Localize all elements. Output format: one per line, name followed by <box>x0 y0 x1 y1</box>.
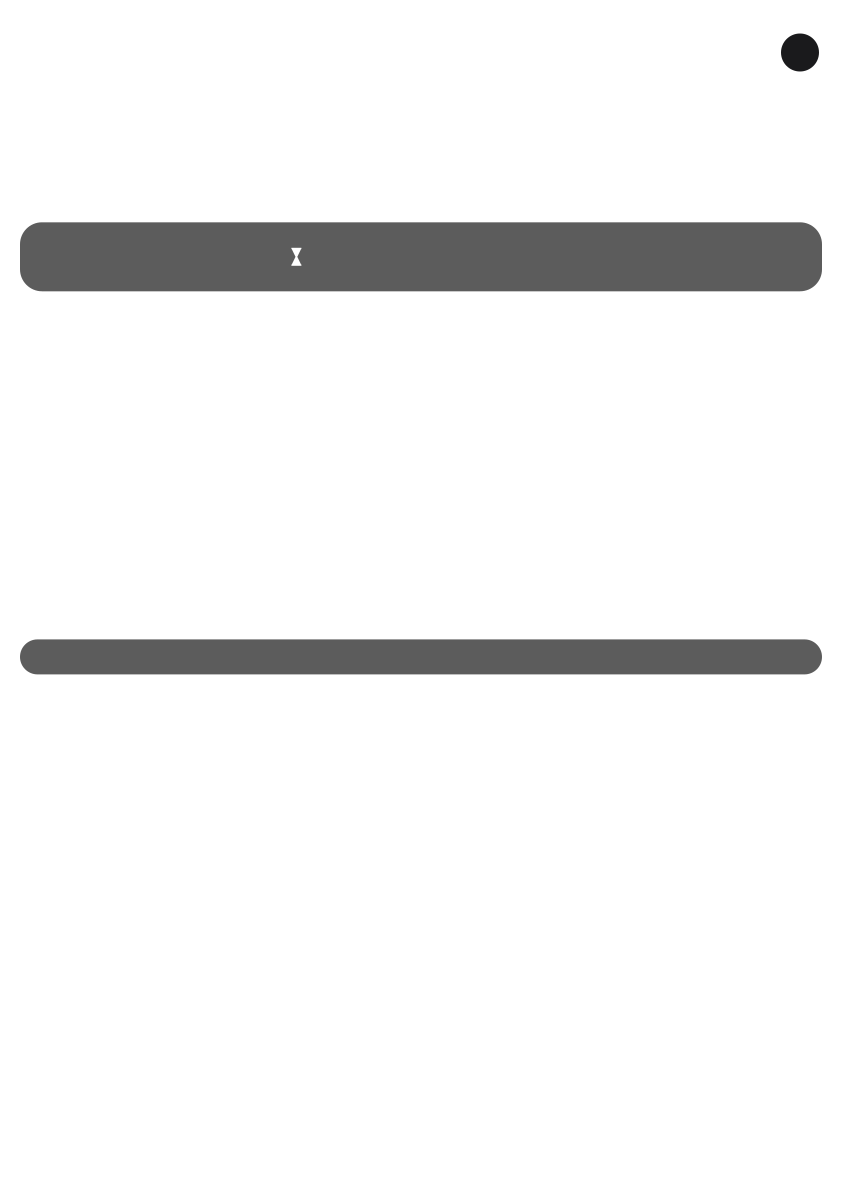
button[interactable]: Profile <box>781 33 819 71</box>
button[interactable]: Action <box>20 639 822 674</box>
button[interactable]: Pending <box>20 222 822 291</box>
